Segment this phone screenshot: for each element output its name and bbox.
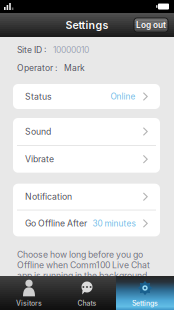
staticText: Log out xyxy=(136,20,166,30)
button[interactable]: Vibrate xyxy=(13,146,160,173)
staticText: Settings xyxy=(65,18,108,31)
staticText: Visitors xyxy=(16,299,42,307)
button[interactable]: Notification xyxy=(13,184,160,210)
button[interactable]: Go Offline After xyxy=(13,210,160,236)
staticText: Chats xyxy=(77,299,96,307)
button[interactable]: Chats xyxy=(58,276,116,310)
staticText: Online xyxy=(111,91,136,101)
staticText: 30 minutes xyxy=(93,218,136,228)
staticText: Site ID : xyxy=(17,45,46,55)
staticText: Status xyxy=(25,91,52,102)
staticText: Operator : xyxy=(17,63,57,73)
button[interactable]: Status xyxy=(13,84,160,109)
staticText: Mark xyxy=(64,63,85,73)
staticText: Settings xyxy=(132,299,158,307)
staticText: Notification xyxy=(25,191,72,202)
button[interactable]: Sound xyxy=(13,118,160,145)
staticText: Go Offline After xyxy=(25,218,87,229)
staticText: 10000010 xyxy=(53,45,89,55)
staticText: Vibrate xyxy=(25,154,54,164)
staticText: Choose how long before you go Offline wh… xyxy=(17,249,150,281)
button[interactable]: Log out xyxy=(134,18,168,32)
button[interactable]: Settings xyxy=(116,276,174,310)
button[interactable]: Visitors xyxy=(0,276,58,310)
staticText: Sound xyxy=(25,126,51,137)
